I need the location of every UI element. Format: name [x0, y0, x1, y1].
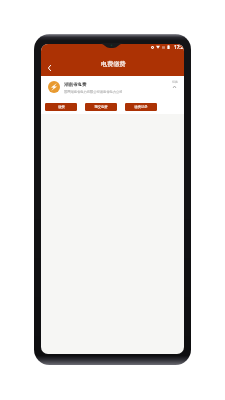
staticText: 切换 — [172, 80, 178, 84]
button[interactable]: 缴费 — [45, 103, 77, 111]
staticText: 缴费 — [58, 105, 65, 109]
staticText: 国网湖南省电力有限公司湖南省电力公司 — [64, 90, 123, 94]
staticText: 预交电费 — [94, 105, 108, 109]
staticText: 17:2 — [174, 44, 184, 50]
button[interactable]: 切换 — [168, 80, 181, 88]
button[interactable]: 预交电费 — [85, 103, 117, 111]
button[interactable]: 缴费记录 — [125, 103, 157, 111]
staticText: 缴费记录 — [134, 105, 148, 109]
button[interactable]: Back — [44, 62, 55, 73]
staticText: 湖南省电费 — [64, 82, 87, 88]
staticText: 电费缴费 — [101, 60, 126, 68]
